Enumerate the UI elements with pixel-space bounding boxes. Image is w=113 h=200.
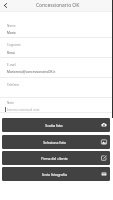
staticText: Telefono bbox=[7, 83, 20, 87]
button[interactable]: Invia fotografia bbox=[2, 167, 110, 181]
staticText: Mario bbox=[7, 31, 16, 35]
button[interactable]: Cognome bbox=[0, 38, 113, 58]
button[interactable]: Note bbox=[0, 98, 113, 113]
button[interactable]: Seleziona foto bbox=[2, 135, 110, 149]
staticText: Scatta foto bbox=[45, 123, 63, 128]
button[interactable]: Scatta foto bbox=[2, 118, 110, 132]
staticText: Concessionario OK bbox=[36, 2, 80, 9]
button[interactable]: Firma del cliente bbox=[2, 151, 110, 165]
staticText: Mariorossi@concessionarioOK.it bbox=[7, 70, 56, 74]
staticText: Firma del cliente bbox=[41, 156, 68, 161]
staticText: Nome bbox=[7, 24, 16, 28]
staticText: Rossi bbox=[7, 51, 15, 55]
staticText: Note bbox=[7, 101, 14, 105]
staticText: Seleziona foto bbox=[43, 140, 66, 145]
button[interactable]: Back bbox=[0, 0, 11, 11]
button[interactable]: Nome bbox=[0, 18, 113, 38]
button[interactable]: E-mail bbox=[0, 58, 113, 78]
staticText: Inserisci eventuali note bbox=[7, 108, 40, 112]
staticText: Invia fotografia bbox=[42, 172, 67, 177]
button[interactable]: Telefono bbox=[0, 78, 113, 98]
staticText: Cognome bbox=[7, 43, 21, 47]
staticText: E-mail bbox=[7, 63, 16, 67]
